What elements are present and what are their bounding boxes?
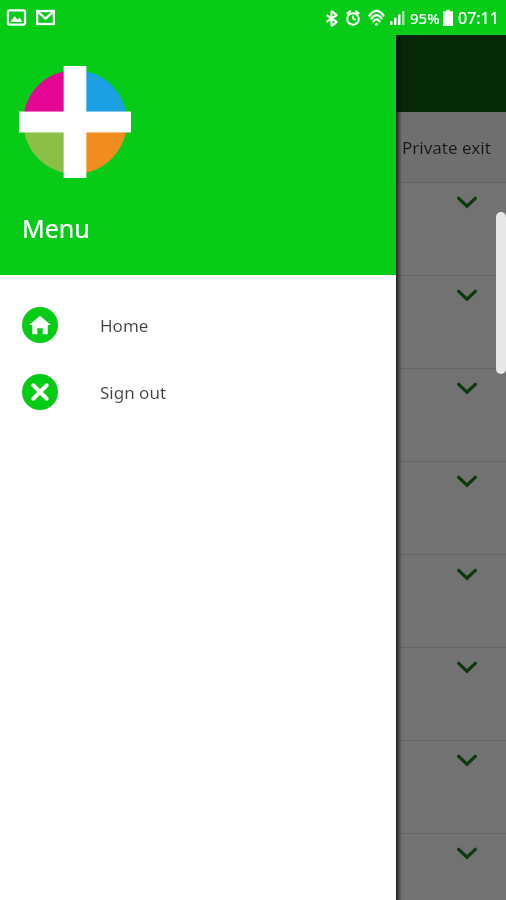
staticText: 07:11 — [458, 7, 499, 29]
button[interactable] — [0, 368, 506, 461]
button[interactable]: Sign out — [0, 358, 396, 425]
button[interactable] — [0, 647, 506, 740]
button[interactable] — [0, 461, 506, 554]
button[interactable] — [0, 833, 506, 900]
staticText: Sign out — [100, 381, 167, 404]
button[interactable] — [0, 554, 506, 647]
button[interactable] — [0, 740, 506, 833]
staticText: 95% — [410, 8, 440, 28]
staticText: Private exit — [402, 136, 491, 159]
staticText: Home — [100, 314, 149, 337]
button[interactable] — [0, 275, 506, 368]
button[interactable]: Home — [0, 291, 396, 358]
staticText: Menu — [22, 211, 90, 245]
button[interactable]: Private exit — [0, 112, 506, 182]
button[interactable] — [0, 182, 506, 275]
